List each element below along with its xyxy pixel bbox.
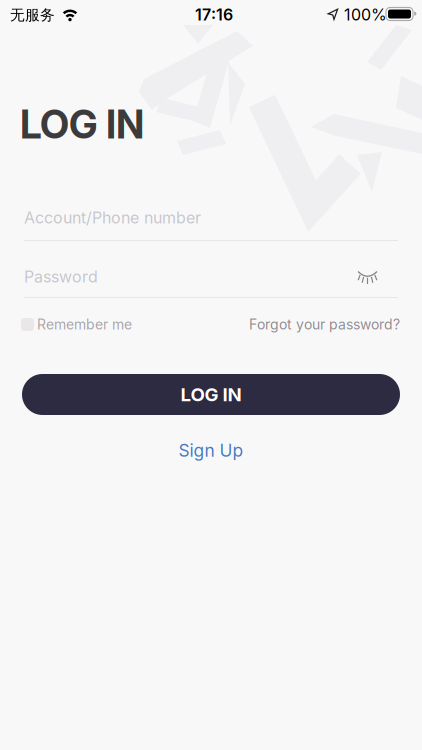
staticText: Password <box>24 267 98 286</box>
staticText: LOG IN <box>180 383 241 406</box>
staticText: 17:16 <box>195 5 233 24</box>
staticText: Forgot your password? <box>249 316 400 333</box>
staticText: Sign Up <box>178 440 243 461</box>
staticText: Account/Phone number <box>24 208 201 227</box>
button[interactable]: Password <box>24 267 398 298</box>
button[interactable]: Sign Up <box>178 440 243 461</box>
button[interactable]: Remember me <box>21 316 132 333</box>
staticText: LOG IN <box>20 101 144 148</box>
button[interactable]: LOG IN <box>22 374 400 415</box>
button[interactable]: Account/Phone number <box>24 208 398 241</box>
staticText: 100% <box>344 5 387 24</box>
button[interactable]: Show password <box>358 270 377 285</box>
staticText: Remember me <box>37 316 132 333</box>
button[interactable]: Forgot your password? <box>249 316 400 333</box>
staticText: 无服务 <box>10 6 55 24</box>
